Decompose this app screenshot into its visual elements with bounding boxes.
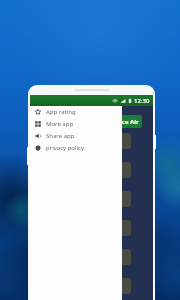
- staticText: Service Air: [107, 118, 139, 126]
- staticText: More app: [46, 120, 74, 128]
- button[interactable]: Service Air: [104, 115, 142, 128]
- button[interactable]: [90, 220, 131, 236]
- button[interactable]: [90, 133, 131, 149]
- staticText: Share app: [46, 132, 75, 140]
- button[interactable]: [90, 191, 131, 207]
- staticText: 12:30: [134, 97, 150, 105]
- button[interactable]: [90, 162, 131, 178]
- staticText: privacy policy: [46, 144, 84, 152]
- staticText: App rating: [46, 108, 76, 116]
- button[interactable]: More app: [30, 118, 122, 130]
- button[interactable]: privacy policy: [30, 142, 122, 154]
- button[interactable]: [90, 249, 131, 265]
- button[interactable]: App rating: [30, 106, 122, 118]
- button[interactable]: Share app: [30, 130, 122, 142]
- button[interactable]: [90, 278, 131, 294]
